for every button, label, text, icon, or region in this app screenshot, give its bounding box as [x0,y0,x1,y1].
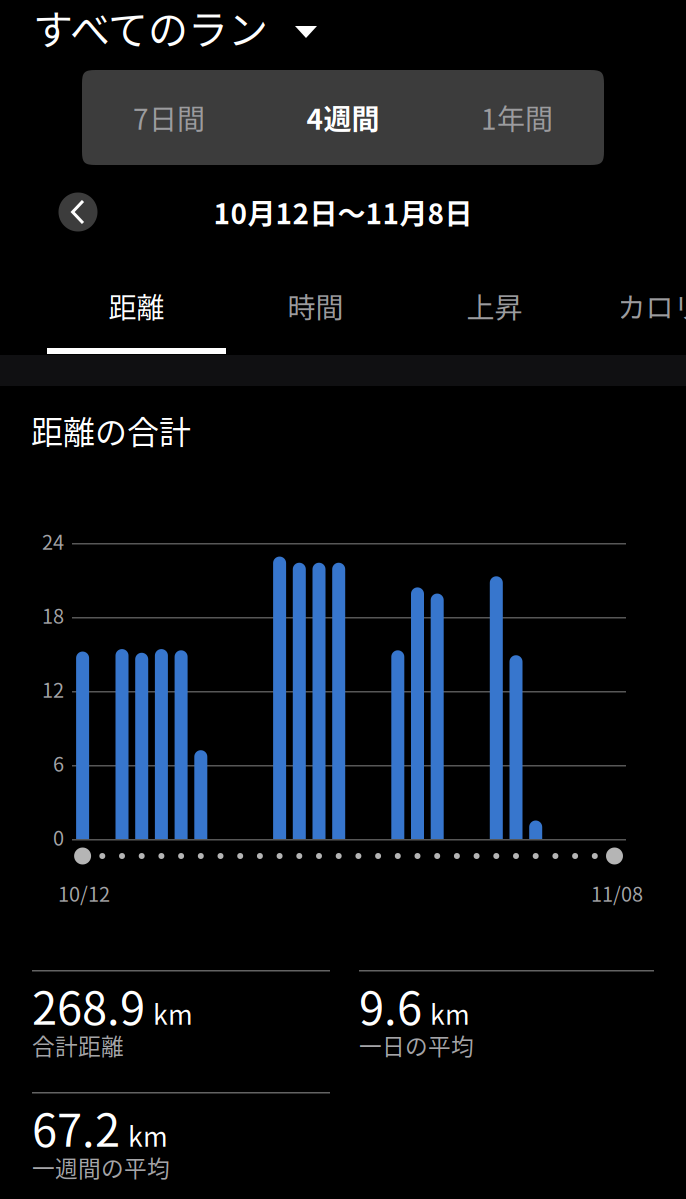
staticText: 一週間の平均 [32,1151,170,1183]
staticText: カロリー [617,286,686,326]
staticText: 12 [42,674,64,703]
button[interactable]: 上昇 [405,266,584,346]
staticText: km [153,994,193,1032]
staticText: 24 [42,526,64,555]
button[interactable]: 1年間 [430,70,604,165]
staticText: km [430,994,470,1032]
staticText: 67.2 [32,1094,120,1160]
button[interactable]: カロリー [584,266,686,346]
staticText: 18 [42,600,64,629]
staticText: 7日間 [133,97,205,138]
staticText: 合計距離 [32,1029,124,1061]
button[interactable]: すべてのラン [33,0,373,55]
staticText: 上昇 [466,286,522,326]
staticText: 268.9 [32,972,145,1038]
staticText: 距離の合計 [31,407,191,453]
staticText: 10月12日〜11月8日 [213,192,472,232]
staticText: すべてのラン [33,0,268,56]
button[interactable]: 4週間 [256,70,430,165]
staticText: 10/12 [58,878,110,907]
button[interactable]: 時間 [226,266,405,346]
staticText: 6 [53,748,64,777]
staticText: 11/08 [591,878,643,907]
staticText: 距離 [108,286,164,326]
staticText: 0 [53,822,64,851]
staticText: 4週間 [306,97,379,138]
button[interactable]: 距離 [47,266,226,346]
staticText: km [128,1116,168,1154]
staticText: 9.6 [359,972,422,1038]
staticText: 一日の平均 [359,1029,474,1061]
button[interactable]: 7日間 [82,70,256,165]
button[interactable]: Previous period [50,184,106,240]
staticText: 時間 [287,286,343,326]
staticText: 1年間 [481,97,553,138]
